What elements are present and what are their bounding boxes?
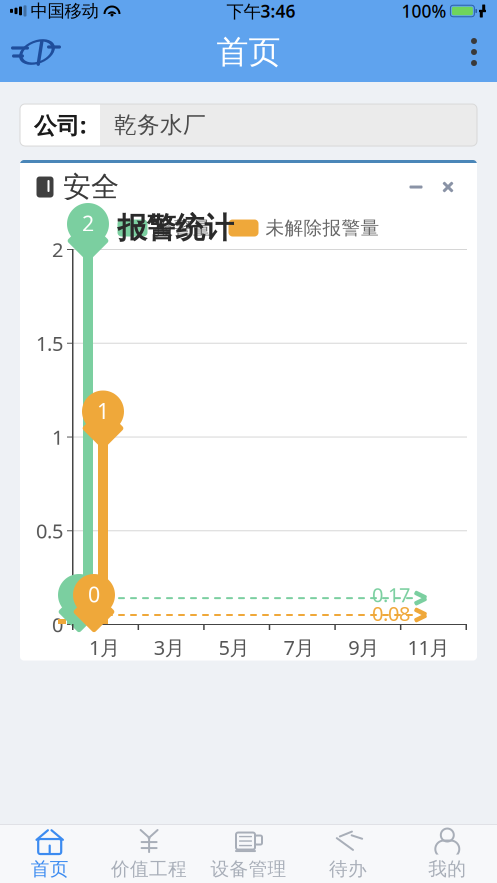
staticText: 未解除报警量 — [265, 216, 379, 239]
staticText: 0 — [52, 611, 63, 638]
staticText: 0.08 — [372, 600, 410, 627]
staticText: 2 — [52, 236, 63, 263]
button[interactable]: Home logo — [0, 31, 66, 73]
staticText: 1 — [52, 424, 63, 450]
staticText: 0 — [88, 580, 100, 608]
button[interactable]: 价值工程 — [99, 825, 199, 883]
staticText: 3月 — [154, 634, 185, 661]
button[interactable]: More options — [451, 25, 497, 79]
staticText: 1月 — [89, 634, 120, 661]
staticText: 设备管理 — [210, 857, 286, 880]
staticText: 0 — [73, 580, 85, 608]
staticText: 1.5 — [36, 330, 63, 357]
staticText: 7月 — [283, 634, 314, 661]
staticText: 公司: — [34, 110, 86, 140]
staticText: 11月 — [408, 634, 450, 661]
button[interactable]: 设备管理 — [199, 825, 298, 883]
staticText: 100% — [401, 0, 446, 22]
button[interactable]: 公司: — [20, 104, 477, 146]
staticText: 首页 — [216, 32, 280, 72]
button[interactable]: 待办 — [298, 825, 398, 883]
staticText: 9月 — [348, 634, 379, 661]
staticText: 5月 — [219, 634, 250, 661]
staticText: 安全 — [63, 170, 119, 204]
staticText: 首页 — [31, 857, 69, 880]
staticText: 我的 — [428, 857, 466, 880]
staticText: 报警统计 — [117, 210, 233, 246]
staticText: 1 — [97, 396, 109, 425]
staticText: 乾务水厂 — [114, 111, 206, 139]
staticText: 下午3:46 — [226, 0, 295, 22]
staticText: 0.5 — [36, 517, 63, 544]
button[interactable]: Minimize — [403, 174, 429, 200]
button[interactable]: Close — [435, 174, 461, 200]
button[interactable]: 首页 — [0, 825, 99, 883]
staticText: 0.17 — [372, 581, 410, 608]
staticText: 2 — [82, 209, 94, 237]
staticText: 待办 — [329, 857, 367, 880]
staticText: 报警量 — [154, 216, 211, 239]
button[interactable]: 我的 — [398, 825, 497, 883]
staticText: 中国移动 — [30, 0, 98, 22]
staticText: 价值工程 — [111, 857, 187, 880]
